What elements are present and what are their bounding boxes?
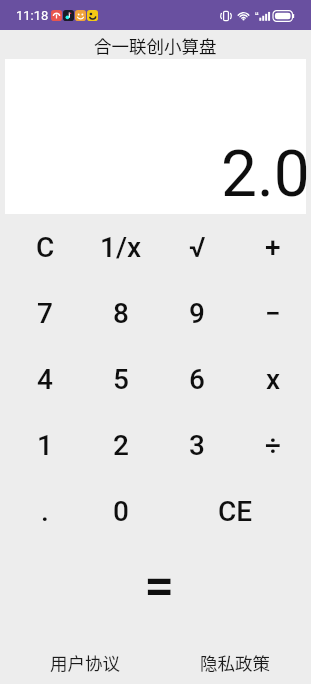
- staticText: 6: [189, 363, 205, 396]
- staticText: 2.0: [221, 137, 310, 212]
- button[interactable]: 0: [83, 478, 159, 544]
- staticText: 0: [113, 495, 129, 528]
- staticText: 7: [37, 297, 53, 330]
- button[interactable]: √: [159, 214, 235, 280]
- button[interactable]: ÷: [235, 412, 311, 478]
- staticText: 隐私政策: [200, 650, 270, 675]
- staticText: x: [266, 363, 281, 396]
- staticText: CE: [218, 495, 253, 528]
- button[interactable]: =: [7, 544, 311, 622]
- button[interactable]: +: [235, 214, 311, 280]
- staticText: −: [265, 297, 281, 330]
- staticText: 9: [189, 297, 205, 330]
- button[interactable]: 用户协议: [0, 640, 155, 684]
- button[interactable]: x: [235, 346, 311, 412]
- staticText: 合一联创小算盘: [94, 33, 217, 58]
- button[interactable]: 8: [83, 280, 159, 346]
- other: Mobile signal: [255, 10, 268, 22]
- button[interactable]: 5: [83, 346, 159, 412]
- button[interactable]: C: [7, 214, 83, 280]
- button[interactable]: 1/x: [83, 214, 159, 280]
- staticText: 1: [37, 429, 53, 462]
- other: Vibrate mode: [220, 10, 232, 22]
- staticText: +: [265, 231, 281, 264]
- button[interactable]: 9: [159, 280, 235, 346]
- staticText: √: [189, 231, 206, 264]
- button[interactable]: 1: [7, 412, 83, 478]
- button[interactable]: .: [7, 478, 83, 544]
- button[interactable]: CE: [159, 478, 311, 544]
- staticText: =: [144, 554, 175, 617]
- staticText: ÷: [265, 429, 281, 462]
- staticText: .: [41, 495, 49, 528]
- other: Wi-Fi: [237, 9, 250, 22]
- staticText: 8: [113, 297, 129, 330]
- staticText: C: [36, 231, 55, 264]
- button[interactable]: 7: [7, 280, 83, 346]
- button[interactable]: 2: [83, 412, 159, 478]
- staticText: 3: [189, 429, 205, 462]
- staticText: 11:18: [16, 8, 49, 23]
- staticText: 4: [37, 363, 53, 396]
- staticText: 5: [113, 363, 129, 396]
- other: Battery: [273, 10, 295, 22]
- button[interactable]: 6: [159, 346, 235, 412]
- button[interactable]: 3: [159, 412, 235, 478]
- button[interactable]: 4: [7, 346, 83, 412]
- staticText: 用户协议: [50, 650, 120, 675]
- staticText: 2: [113, 429, 129, 462]
- button[interactable]: 隐私政策: [155, 640, 311, 684]
- button[interactable]: −: [235, 280, 311, 346]
- staticText: 1/x: [100, 231, 142, 264]
